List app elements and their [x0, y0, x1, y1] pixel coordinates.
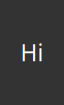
staticText: Hi — [20, 37, 43, 67]
